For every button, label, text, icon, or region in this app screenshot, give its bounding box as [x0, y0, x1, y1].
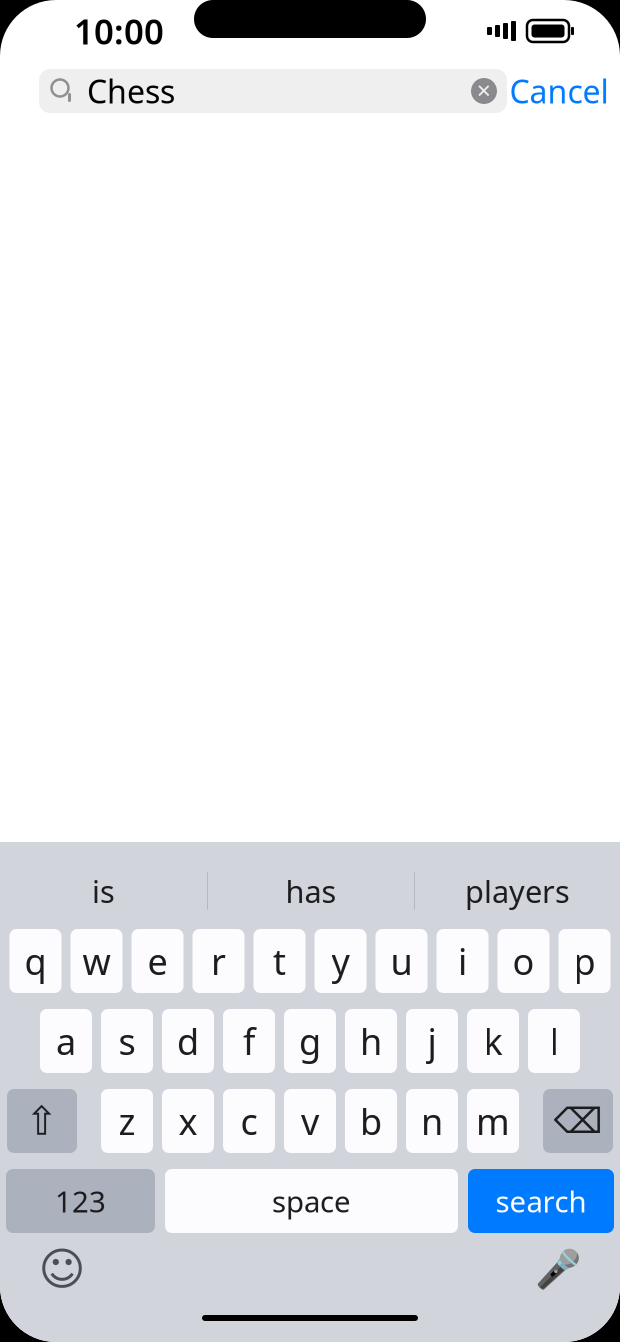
staticText: space	[272, 1181, 351, 1220]
staticText: t	[273, 937, 286, 985]
staticText: x	[178, 1097, 197, 1145]
button[interactable]: is	[0, 863, 207, 919]
staticText: n	[421, 1097, 443, 1145]
staticText: a	[56, 1017, 76, 1065]
button[interactable]: Cancel	[507, 69, 611, 113]
staticText: e	[147, 937, 167, 985]
staticText: ✕	[476, 80, 492, 102]
button[interactable]: s	[101, 1009, 153, 1073]
button[interactable]: c	[223, 1089, 275, 1153]
button[interactable]: j	[406, 1009, 458, 1073]
staticText: y	[331, 937, 349, 985]
staticText: 🎤	[535, 1248, 581, 1290]
button[interactable]: m	[467, 1089, 519, 1153]
staticText: ⇧	[25, 1098, 59, 1144]
staticText: ☺	[38, 1243, 85, 1295]
staticText: o	[512, 937, 534, 985]
button[interactable]: 123	[6, 1169, 155, 1233]
staticText: s	[118, 1017, 135, 1065]
staticText: v	[301, 1097, 319, 1145]
staticText: 10:00	[74, 8, 164, 54]
button[interactable]: o	[497, 929, 549, 993]
staticText: g	[299, 1017, 321, 1065]
staticText: i	[458, 937, 467, 985]
staticText: is	[92, 871, 115, 911]
button[interactable]: Dictation	[530, 1241, 586, 1297]
staticText: has	[285, 871, 336, 911]
staticText: q	[24, 937, 46, 985]
staticText: Chess	[87, 70, 175, 112]
button[interactable]: b	[345, 1089, 397, 1153]
staticText: search	[495, 1181, 586, 1220]
staticText: u	[390, 937, 412, 985]
button[interactable]: p	[558, 929, 610, 993]
button[interactable]: t	[253, 929, 305, 993]
button[interactable]: g	[284, 1009, 336, 1073]
button[interactable]: search	[468, 1169, 614, 1233]
staticText: c	[240, 1097, 257, 1145]
button[interactable]: n	[406, 1089, 458, 1153]
button[interactable]: k	[467, 1009, 519, 1073]
button[interactable]: Delete	[543, 1089, 613, 1153]
button[interactable]: Shift	[7, 1089, 77, 1153]
button[interactable]: z	[101, 1089, 153, 1153]
button[interactable]: x	[162, 1089, 214, 1153]
button[interactable]: has	[208, 863, 414, 919]
button[interactable]: v	[284, 1089, 336, 1153]
button[interactable]: y	[314, 929, 366, 993]
staticText: players	[465, 871, 570, 911]
button[interactable]: f	[223, 1009, 275, 1073]
staticText: z	[118, 1097, 135, 1145]
button[interactable]: q	[9, 929, 61, 993]
staticText: 123	[55, 1181, 106, 1220]
button[interactable]: players	[415, 863, 620, 919]
button[interactable]: h	[345, 1009, 397, 1073]
button[interactable]: Chess	[39, 69, 507, 113]
button[interactable]: w	[70, 929, 122, 993]
staticText: ⌫	[553, 1101, 602, 1141]
staticText: k	[483, 1017, 502, 1065]
staticText: m	[476, 1097, 510, 1145]
button[interactable]: Emoji keyboard	[34, 1241, 90, 1297]
staticText: b	[360, 1097, 382, 1145]
staticText: l	[549, 1017, 558, 1065]
staticText: r	[211, 937, 226, 985]
staticText: Cancel	[509, 70, 608, 112]
staticText: p	[573, 937, 595, 985]
staticText: h	[360, 1017, 382, 1065]
button[interactable]: r	[192, 929, 244, 993]
button[interactable]: e	[131, 929, 183, 993]
button[interactable]: l	[528, 1009, 580, 1073]
button[interactable]: i	[436, 929, 488, 993]
staticText: w	[82, 937, 110, 985]
staticText: j	[427, 1017, 436, 1065]
button[interactable]: a	[40, 1009, 92, 1073]
staticText: f	[243, 1017, 255, 1065]
button[interactable]: u	[375, 929, 427, 993]
button[interactable]: space	[165, 1169, 458, 1233]
button[interactable]: d	[162, 1009, 214, 1073]
staticText: d	[177, 1017, 199, 1065]
